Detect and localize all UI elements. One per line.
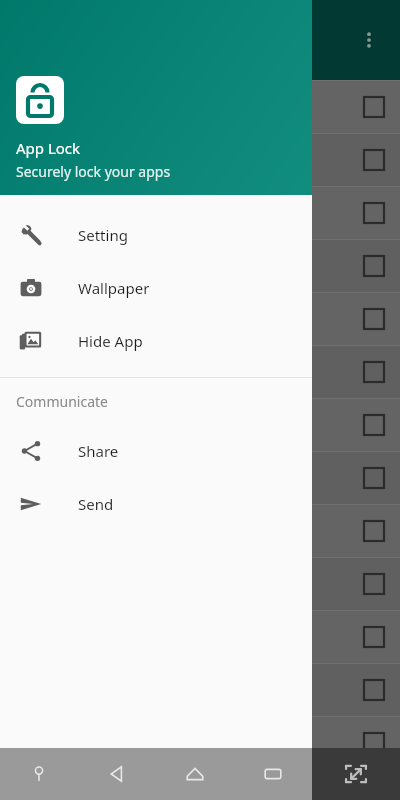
staticText: App Lock — [16, 138, 81, 158]
button[interactable] — [0, 557, 400, 610]
button[interactable]: Hide App — [0, 314, 312, 367]
button[interactable] — [0, 133, 400, 186]
button[interactable]: Assistant — [0, 748, 78, 800]
staticText: Securely lock your apps — [16, 162, 171, 181]
button[interactable] — [0, 504, 400, 557]
button[interactable]: Home — [156, 748, 234, 800]
staticText: Communicate — [16, 392, 108, 411]
staticText: Share — [78, 441, 119, 461]
button[interactable]: Share — [0, 424, 312, 477]
button[interactable] — [0, 239, 400, 292]
button[interactable] — [0, 451, 400, 504]
button[interactable] — [0, 663, 400, 716]
staticText: Send — [78, 494, 114, 514]
button[interactable] — [0, 80, 400, 133]
button[interactable] — [0, 186, 400, 239]
button[interactable]: Send — [0, 477, 312, 530]
button[interactable]: More options — [352, 23, 386, 57]
button[interactable]: Expand screen — [339, 757, 373, 791]
staticText: Hide App — [78, 331, 143, 351]
button[interactable]: Recents — [234, 748, 312, 800]
button[interactable]: Wallpaper — [0, 261, 312, 314]
button[interactable] — [0, 610, 400, 663]
button[interactable]: Back — [78, 748, 156, 800]
staticText: Wallpaper — [78, 278, 150, 298]
staticText: Setting — [78, 225, 128, 245]
button[interactable]: Setting — [0, 208, 312, 261]
button[interactable] — [0, 292, 400, 345]
button[interactable] — [0, 345, 400, 398]
button[interactable] — [0, 398, 400, 451]
button[interactable] — [0, 716, 400, 769]
